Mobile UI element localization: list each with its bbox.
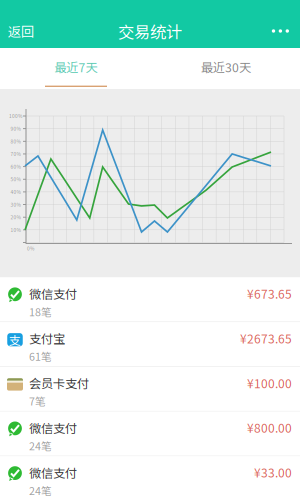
staticText: 微信支付 [29,419,77,436]
button[interactable]: 最近30天 [152,48,300,89]
staticText: 返回 [8,21,34,41]
staticText: 61笔 [29,348,52,364]
staticText: 18笔 [29,304,52,319]
button[interactable]: 会员卡支付 [0,367,300,412]
staticText: 7笔 [29,393,46,409]
button[interactable]: More options [260,15,300,47]
button[interactable]: 最近7天 [0,48,152,89]
staticText: ¥33.00 [254,464,292,481]
staticText: 20% [10,214,20,221]
button[interactable]: 微信支付 [0,412,300,456]
staticText: ¥2673.65 [240,329,292,347]
staticText: 90% [10,125,20,132]
staticText: ¥800.00 [247,419,292,436]
staticText: 50% [10,176,20,183]
staticText: 微信支付 [29,285,77,302]
staticText: 30% [10,201,20,208]
staticText: 60% [10,163,20,170]
staticText: 40% [10,188,20,195]
staticText: 最近7天 [54,58,97,76]
staticText: 支 [9,331,21,348]
button[interactable]: 微信支付 [0,277,300,322]
staticText: ¥673.65 [247,285,292,302]
staticText: 10% [10,226,20,233]
button[interactable]: 返回 [0,15,42,47]
staticText: 交易统计 [118,19,182,43]
staticText: 80% [10,138,20,145]
staticText: 24笔 [29,438,52,453]
staticText: 0% [27,245,34,252]
staticText: 24笔 [29,483,52,498]
button[interactable]: 微信支付 [0,456,300,500]
staticText: 微信支付 [29,463,77,481]
staticText: 最近30天 [201,58,251,76]
staticText: 会员卡支付 [29,374,89,392]
staticText: 支付宝 [29,329,65,347]
staticText: ¥100.00 [247,374,292,392]
button[interactable]: 支 [0,322,300,367]
staticText: 100% [9,112,22,119]
staticText: 70% [10,150,20,157]
